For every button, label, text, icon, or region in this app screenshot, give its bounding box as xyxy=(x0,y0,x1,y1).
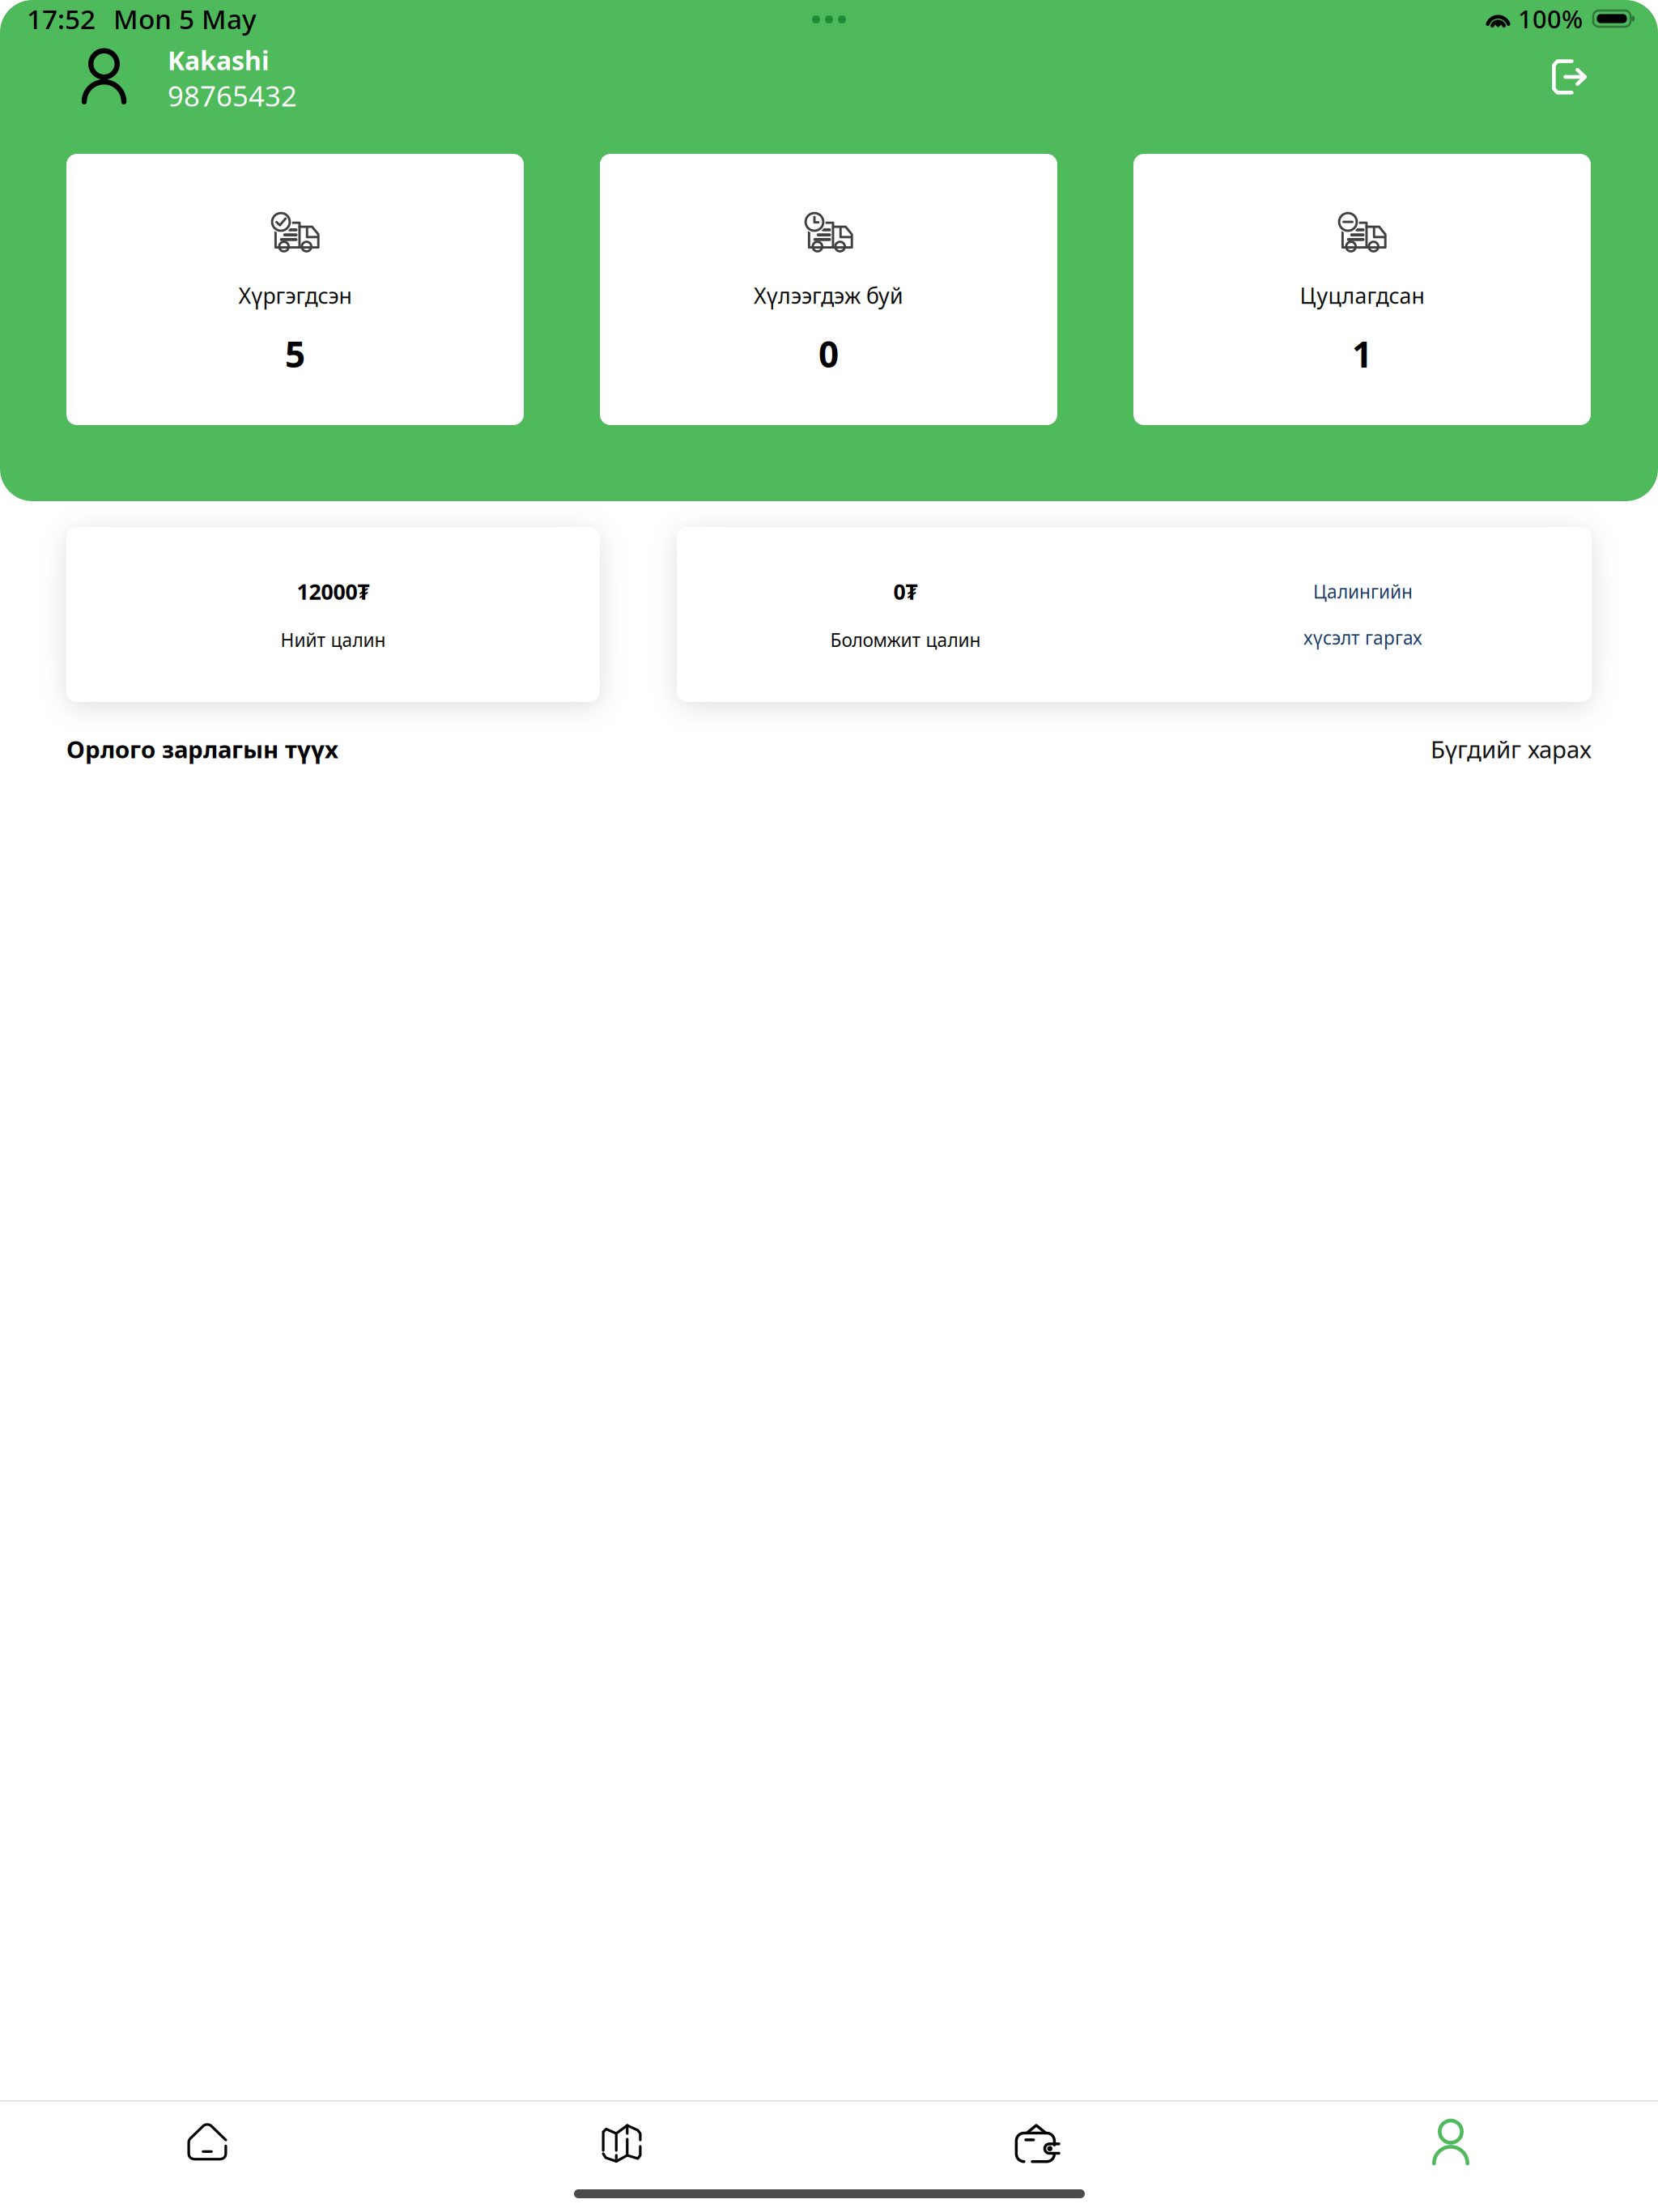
staticText: 12000₮ xyxy=(297,577,370,606)
staticText: 100% xyxy=(1518,2,1583,35)
button[interactable]: Wallet xyxy=(829,2119,1243,2164)
button[interactable]: Бүгдийг харах xyxy=(1431,733,1592,765)
staticText: 17:52 xyxy=(27,1,96,37)
staticText: 0 xyxy=(818,330,839,377)
staticText: Kakashi xyxy=(168,43,270,77)
staticText: Орлого зарлагын түүх xyxy=(66,733,338,765)
button[interactable]: Map xyxy=(414,2119,829,2164)
staticText: 5 xyxy=(285,330,305,377)
button[interactable]: Log out xyxy=(1550,59,1586,95)
staticText: Цалингийн xyxy=(1313,579,1413,604)
button[interactable]: Цуцлагдсан xyxy=(1133,154,1591,425)
staticText: 0₮ xyxy=(893,577,918,606)
button[interactable]: Profile xyxy=(1243,2119,1658,2164)
staticText: Бүгдийг харах xyxy=(1431,733,1592,765)
staticText: 1 xyxy=(1352,330,1372,377)
button[interactable]: Home xyxy=(0,2119,414,2164)
staticText: 98765432 xyxy=(168,77,297,114)
staticText: Нийт цалин xyxy=(281,628,386,652)
staticText: хүсэлт гаргах xyxy=(1303,625,1422,650)
button[interactable]: Хүргэгдсэн xyxy=(66,154,524,425)
staticText: Хүргэгдсэн xyxy=(238,281,352,310)
staticText: Хүлээгдэж буй xyxy=(754,281,903,310)
button[interactable]: Цалингийн xyxy=(1134,579,1592,650)
staticText: Цуцлагдсан xyxy=(1300,281,1424,310)
staticText: Mon 5 May xyxy=(113,1,257,37)
button[interactable]: Хүлээгдэж буй xyxy=(600,154,1057,425)
staticText: Боломжит цалин xyxy=(830,628,981,652)
